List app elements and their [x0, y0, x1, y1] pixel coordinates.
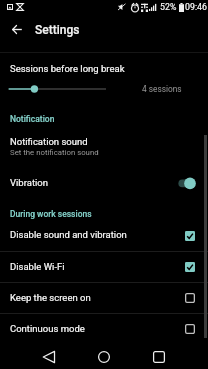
- staticText: During work sessions: [10, 209, 92, 219]
- button[interactable]: [0, 56, 208, 100]
- staticText: Disable sound and vibration: [10, 229, 127, 240]
- button[interactable]: [0, 220, 208, 251]
- staticText: Notification sound: [10, 136, 88, 147]
- button[interactable]: Back: [35, 343, 63, 369]
- staticText: Settings: [35, 23, 80, 37]
- staticText: Sessions before long break: [10, 63, 125, 74]
- button[interactable]: [0, 313, 208, 344]
- staticText: 4 sessions: [142, 84, 182, 94]
- staticText: Notification: [10, 114, 55, 124]
- staticText: 09:46: [185, 2, 207, 12]
- staticText: Disable Wi-Fi: [10, 261, 65, 272]
- staticText: Vibration: [10, 177, 48, 188]
- staticText: Keep the screen on: [10, 292, 91, 303]
- button[interactable]: [0, 282, 208, 313]
- button[interactable]: [0, 131, 208, 162]
- button[interactable]: Navigate up: [0, 14, 33, 44]
- staticText: 52%: [160, 2, 177, 12]
- button[interactable]: Home: [90, 343, 118, 369]
- button[interactable]: Vibration: [172, 172, 202, 196]
- staticText: Set the notification sound: [10, 148, 99, 157]
- button[interactable]: Recent apps: [145, 343, 173, 369]
- staticText: Continuous mode: [10, 323, 85, 334]
- button[interactable]: [0, 251, 208, 282]
- button[interactable]: [0, 172, 208, 196]
